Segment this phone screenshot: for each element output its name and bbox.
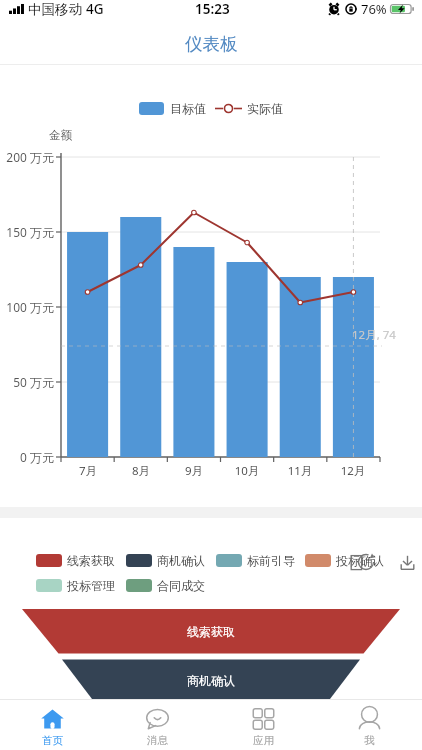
button[interactable]: 商机确认 [0, 673, 422, 688]
staticText: 目标值 [170, 101, 206, 116]
button[interactable]: 应用 [210, 700, 316, 750]
staticText: 商机确认 [187, 673, 235, 688]
staticText: 15:23 [195, 0, 230, 18]
staticText: 线索获取 [187, 624, 235, 639]
staticText: 标前引导 [247, 553, 295, 568]
button[interactable]: 投标确认 [305, 553, 384, 568]
button[interactable]: 实际值 [215, 101, 283, 116]
staticText: 投标确认 [336, 553, 384, 568]
staticText: 商机确认 [157, 553, 205, 568]
staticText: 10月 [222, 463, 272, 479]
staticText: 4G [86, 0, 104, 18]
button[interactable]: 我 [316, 700, 422, 750]
button[interactable]: 线索获取 [36, 553, 115, 568]
staticText: 金额 [49, 128, 72, 142]
staticText: 中国移动 [28, 1, 82, 18]
button[interactable]: 商机确认 [126, 553, 205, 568]
staticText: 9月 [169, 463, 219, 479]
staticText: 我 [364, 734, 375, 747]
staticText: 12月 [328, 463, 378, 479]
staticText: 消息 [147, 734, 168, 747]
staticText: 100 万元 [0, 299, 54, 315]
staticText: 11月 [275, 463, 325, 479]
button[interactable]: Download [400, 555, 415, 570]
staticText: 50 万元 [0, 374, 54, 390]
staticText: 150 万元 [0, 224, 54, 240]
button[interactable]: 投标管理 [36, 578, 115, 593]
button[interactable]: 线索获取 [0, 624, 422, 639]
staticText: 首页 [42, 734, 63, 747]
button[interactable]: 合同成交 [126, 578, 205, 593]
staticText: 应用 [253, 734, 274, 747]
button[interactable]: 目标值 [139, 101, 206, 116]
staticText: 0 万元 [0, 449, 54, 465]
button[interactable]: 消息 [105, 700, 210, 750]
staticText: 线索获取 [67, 553, 115, 568]
button[interactable]: 首页 [0, 700, 105, 750]
staticText: 12月, 74 [352, 327, 396, 343]
button[interactable]: Restore [350, 552, 374, 576]
staticText: 合同成交 [157, 578, 205, 593]
staticText: 投标管理 [67, 578, 115, 593]
staticText: 76% [361, 0, 387, 18]
staticText: 实际值 [247, 101, 283, 116]
staticText: 7月 [63, 463, 113, 479]
button[interactable]: 标前引导 [216, 553, 295, 568]
staticText: 200 万元 [0, 149, 54, 165]
staticText: 8月 [116, 463, 166, 479]
staticText: 仪表板 [185, 33, 238, 55]
